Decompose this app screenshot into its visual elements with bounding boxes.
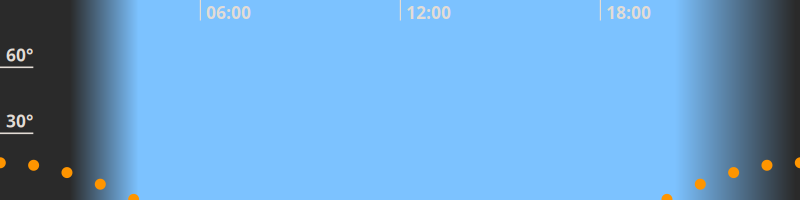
staticText: 30° (6, 109, 33, 132)
staticText: 60° (6, 43, 33, 66)
staticText: 06:00 (206, 1, 251, 24)
staticText: 18:00 (606, 1, 651, 24)
staticText: 12:00 (406, 1, 451, 24)
